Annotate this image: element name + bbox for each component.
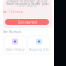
staticText: Save on every order you (6, 1, 48, 6)
staticText: Save 12% today (2, 10, 22, 14)
staticText: Get started (17, 19, 36, 25)
button[interactable]: Decrease quantity (38, 10, 42, 14)
staticText: Shipping Info (29, 48, 49, 51)
staticText: Cancel anytime (17, 4, 37, 8)
staticText: Order History (6, 48, 24, 51)
staticText: Site Shortcuts (3, 30, 21, 34)
button[interactable]: Shipping Info (28, 36, 50, 54)
button[interactable]: Order History (4, 36, 26, 54)
staticText: Unlock member prices (6, 0, 47, 4)
button[interactable]: Get started (5, 19, 49, 25)
